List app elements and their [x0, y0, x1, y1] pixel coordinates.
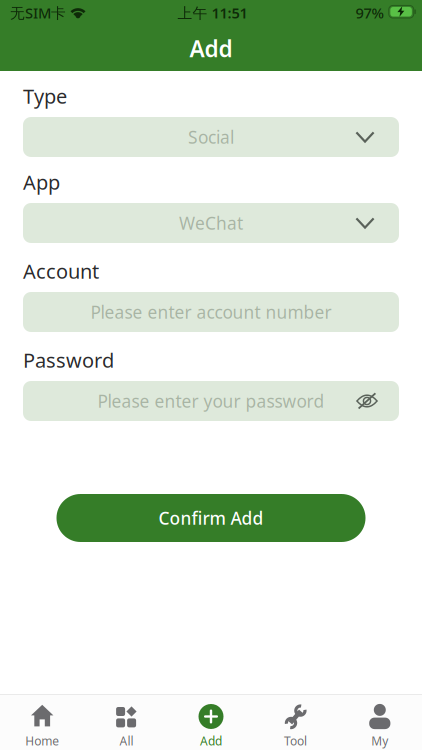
button[interactable]: WeChat: [23, 203, 399, 243]
staticText: Home: [25, 733, 59, 749]
staticText: Type: [23, 83, 67, 109]
staticText: Confirm Add: [158, 506, 263, 529]
staticText: Password: [23, 347, 114, 373]
button[interactable]: My: [338, 695, 422, 750]
staticText: Tool: [284, 733, 307, 749]
staticText: Add: [200, 733, 222, 749]
button[interactable]: All: [84, 695, 169, 750]
button[interactable]: Add: [169, 695, 253, 750]
button[interactable]: Confirm Add: [56, 494, 365, 542]
staticText: 上午 11:51: [177, 3, 247, 22]
button[interactable]: Home: [0, 695, 84, 750]
staticText: All: [120, 733, 134, 749]
staticText: Account: [23, 258, 99, 284]
staticText: Social: [188, 125, 234, 148]
staticText: My: [371, 733, 388, 749]
staticText: 无SIM卡: [10, 3, 66, 22]
button[interactable]: Tool: [253, 695, 338, 750]
staticText: App: [23, 169, 60, 195]
staticText: Add: [189, 33, 232, 63]
button[interactable]: Social: [23, 117, 399, 157]
staticText: Please enter your password: [97, 389, 324, 412]
button[interactable]: Show password: [356, 392, 378, 409]
staticText: Please enter account number: [90, 300, 331, 323]
staticText: WeChat: [179, 211, 243, 234]
staticText: 97%: [355, 3, 383, 22]
